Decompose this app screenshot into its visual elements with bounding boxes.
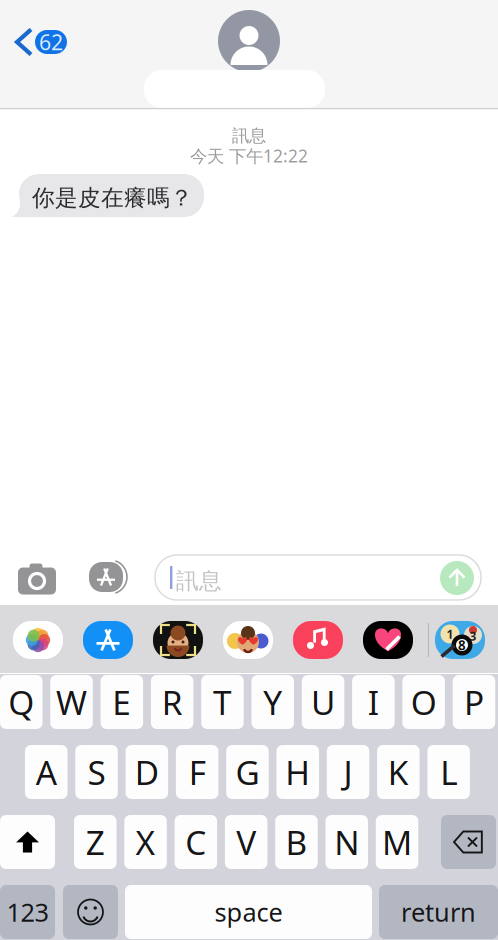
staticText: M	[382, 820, 412, 864]
staticText: K	[388, 750, 409, 794]
staticText: W	[56, 680, 87, 724]
staticText: return	[401, 895, 476, 929]
button[interactable]: Camera	[17, 563, 57, 595]
staticText: A	[36, 750, 57, 794]
staticText: R	[162, 680, 183, 724]
staticText: T	[213, 680, 232, 724]
button[interactable]: 62	[17, 26, 73, 58]
staticText: 你是皮在癢嗎？	[32, 184, 193, 212]
staticText: 今天 下午12:22	[190, 144, 308, 167]
staticText: 訊息	[232, 125, 266, 146]
staticText: O	[411, 680, 437, 724]
button[interactable]: F	[176, 745, 218, 799]
button[interactable]: Memoji	[153, 621, 203, 659]
button[interactable]: V	[225, 815, 267, 869]
button[interactable]: W	[50, 675, 93, 729]
staticText: F	[189, 750, 206, 794]
staticText: Z	[86, 820, 105, 864]
button[interactable]: Fitness	[363, 621, 413, 659]
staticText: 1	[446, 626, 453, 642]
button[interactable]: R	[151, 675, 193, 729]
button[interactable]: P	[453, 675, 495, 729]
staticText: space	[214, 895, 282, 929]
button[interactable]: Z	[74, 815, 116, 869]
button[interactable]: A	[25, 745, 67, 799]
button[interactable]: X	[124, 815, 167, 869]
button[interactable]: App Store	[85, 560, 127, 594]
button[interactable]: B	[275, 815, 318, 869]
staticText: Q	[8, 680, 34, 724]
staticText: 8	[458, 636, 466, 654]
button[interactable]: Q	[0, 675, 42, 729]
staticText: E	[112, 680, 131, 724]
staticText: G	[235, 750, 259, 794]
button[interactable]: D	[126, 745, 168, 799]
button[interactable]: 8 Ball	[435, 621, 485, 659]
button[interactable]: E	[101, 675, 143, 729]
staticText: U	[311, 680, 335, 724]
staticText: N	[334, 820, 359, 864]
staticText: 訊息	[176, 567, 222, 595]
staticText: 123	[6, 895, 48, 929]
button[interactable]: M	[376, 815, 418, 869]
button[interactable]: return	[379, 885, 498, 939]
staticText: V	[236, 820, 256, 864]
staticText: B	[285, 820, 307, 864]
staticText: S	[87, 750, 105, 794]
button[interactable]: Y	[251, 675, 294, 729]
button[interactable]: C	[175, 815, 217, 869]
button[interactable]: J	[327, 745, 369, 799]
button[interactable]: space	[125, 885, 372, 939]
staticText: P	[464, 680, 484, 724]
staticText: I	[368, 680, 379, 724]
button[interactable]: K	[377, 745, 420, 799]
button[interactable]: Shift	[0, 815, 55, 869]
staticText: L	[440, 750, 457, 794]
button[interactable]: I	[352, 675, 395, 729]
staticText: Y	[263, 680, 282, 724]
button[interactable]: L	[427, 745, 470, 799]
staticText: J	[344, 750, 353, 794]
button[interactable]: App Store	[83, 621, 133, 659]
staticText: H	[285, 750, 310, 794]
button[interactable]: Music	[293, 621, 343, 659]
button[interactable]: G	[226, 745, 269, 799]
button[interactable]: Photos	[13, 621, 63, 659]
button[interactable]: U	[302, 675, 344, 729]
staticText: D	[135, 750, 159, 794]
button[interactable]: H	[276, 745, 319, 799]
button[interactable]: T	[201, 675, 244, 729]
staticText: 62	[39, 28, 63, 56]
staticText: X	[136, 820, 156, 864]
button[interactable]: O	[402, 675, 445, 729]
button[interactable]: N	[325, 815, 368, 869]
staticText: 3	[469, 628, 476, 644]
button[interactable]: Send	[438, 559, 476, 597]
button[interactable]: Emoji stickers	[223, 621, 273, 659]
staticText: C	[185, 820, 206, 864]
button[interactable]: 123	[0, 885, 55, 939]
button[interactable]: Delete	[441, 815, 496, 869]
button[interactable]: Emoji	[63, 885, 118, 939]
button[interactable]: S	[75, 745, 118, 799]
